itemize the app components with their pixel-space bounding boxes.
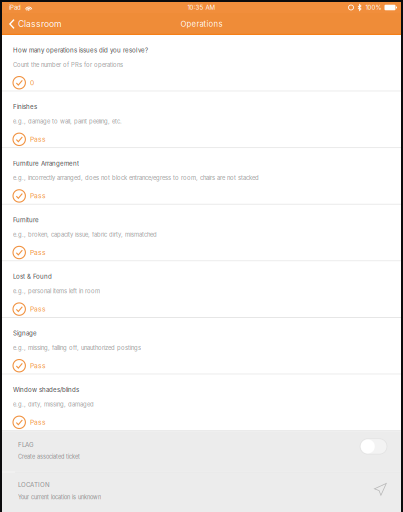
button[interactable]: How many operations issues did you resol…	[2, 35, 401, 91]
staticText: Pass	[30, 248, 46, 257]
staticText: FLAG	[18, 441, 34, 448]
staticText: Window shades/blinds	[13, 386, 79, 393]
staticText: Furniture Arrangement	[13, 160, 79, 167]
staticText: e.g., damage to wall, paint peeling, etc…	[13, 118, 122, 125]
button[interactable]: LOCATION	[2, 473, 401, 512]
staticText: e.g., dirty, missing, damaged	[13, 401, 94, 408]
button[interactable]: Furniture Arrangement	[2, 148, 401, 204]
button[interactable]: Lost & Found	[2, 261, 401, 317]
staticText: Pass	[30, 362, 46, 370]
staticText: LOCATION	[18, 481, 50, 488]
button[interactable]: Signage	[2, 318, 401, 374]
staticText: 100%	[365, 4, 381, 11]
staticText: iPad	[9, 4, 21, 11]
staticText: How many operations issues did you resol…	[13, 46, 148, 54]
staticText: Finishes	[13, 103, 37, 110]
staticText: Pass	[30, 192, 46, 200]
staticText: Create associated ticket	[18, 453, 80, 460]
button[interactable]: Furniture	[2, 205, 401, 260]
staticText: Furniture	[13, 216, 39, 224]
staticText: Signage	[13, 329, 37, 337]
staticText: Pass	[30, 418, 46, 426]
staticText: Operations	[180, 19, 222, 29]
button[interactable]: FLAG	[2, 431, 401, 472]
staticText: 10:35 AM	[187, 4, 215, 11]
button[interactable]: Classroom	[2, 13, 67, 35]
button[interactable]: Window shades/blinds	[2, 375, 401, 430]
staticText: Your current location is unknown	[18, 494, 101, 501]
staticText: e.g., incorrectly arranged, does not blo…	[13, 174, 259, 181]
staticText: Count the number of PRs for operations	[13, 61, 123, 68]
button[interactable]: Finishes	[2, 92, 401, 147]
staticText: 0	[30, 79, 34, 87]
staticText: Pass	[30, 305, 46, 313]
staticText: Pass	[30, 135, 46, 143]
staticText: Lost & Found	[13, 273, 52, 280]
staticText: e.g., broken, capacity issue, fabric dir…	[13, 231, 157, 238]
staticText: e.g., missing, falling off, unauthorized…	[13, 344, 141, 351]
staticText: e.g., personal items left in room	[13, 288, 100, 295]
staticText: Classroom	[18, 19, 61, 29]
